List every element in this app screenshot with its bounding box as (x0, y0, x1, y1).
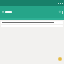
button[interactable] (1, 21, 63, 24)
button[interactable]: Search (58, 6, 61, 18)
button[interactable]: Create new item (58, 57, 62, 61)
button[interactable]: More options (61, 6, 63, 18)
button[interactable]: Open navigation menu (1, 6, 4, 18)
